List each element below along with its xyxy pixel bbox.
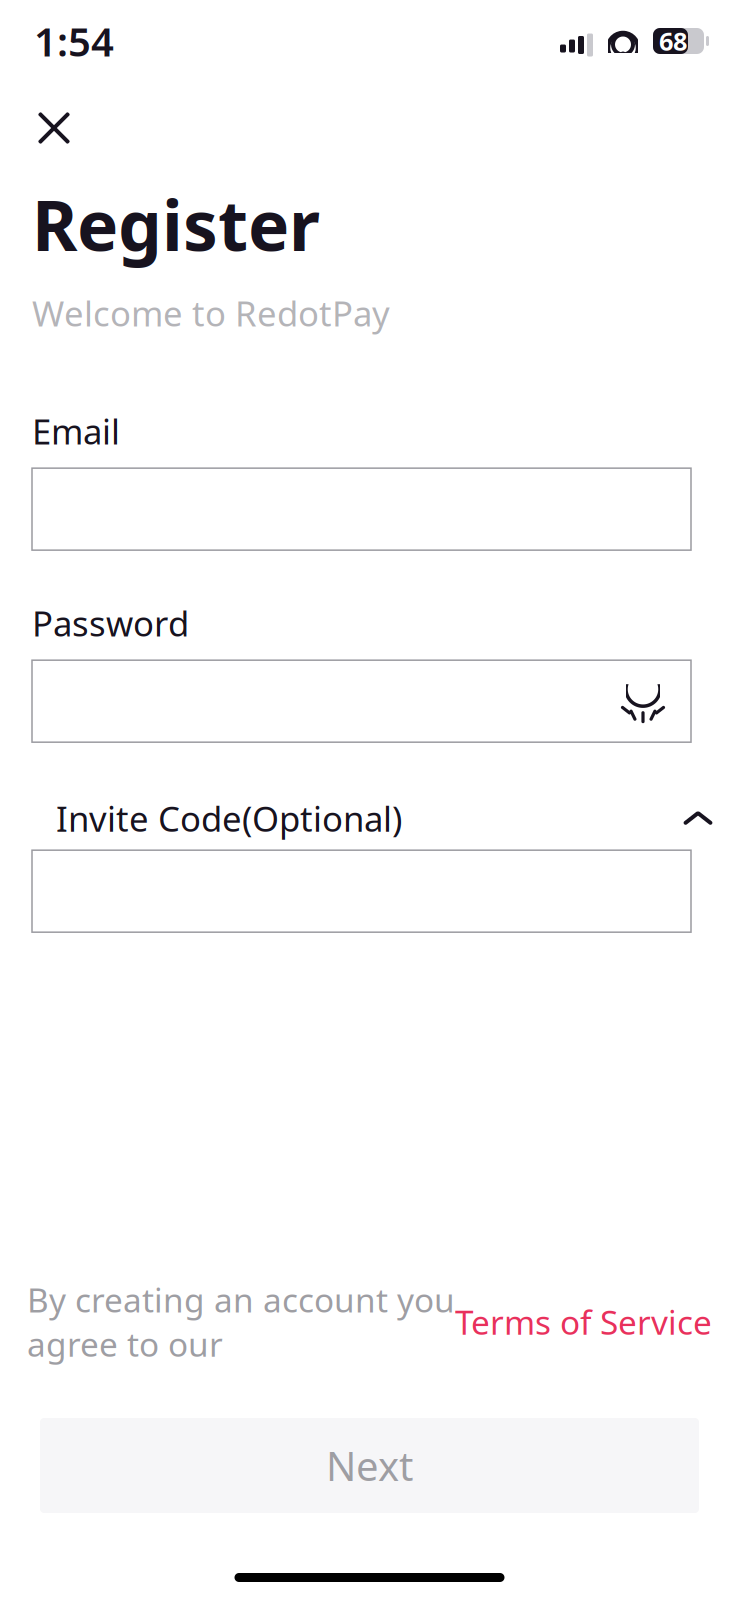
staticText: Terms of Service — [455, 1300, 712, 1344]
button[interactable]: Terms of Service — [455, 1300, 712, 1344]
staticText: 68 — [659, 24, 687, 58]
staticText: Password — [32, 600, 189, 646]
staticText: By creating an account you agree to our — [27, 1277, 455, 1366]
staticText: 1:54 — [34, 14, 114, 67]
staticText: Register — [32, 178, 320, 270]
staticText: Next — [326, 1439, 413, 1492]
staticText: Welcome to RedotPay — [32, 290, 390, 336]
button[interactable]: Invite Code(Optional) — [56, 798, 715, 838]
button[interactable]: Close — [0, 100, 86, 156]
staticText: Invite Code(Optional) — [56, 795, 402, 841]
button[interactable]: Show password — [615, 660, 671, 742]
button[interactable]: Next — [40, 1418, 699, 1513]
staticText: Email — [32, 408, 120, 454]
